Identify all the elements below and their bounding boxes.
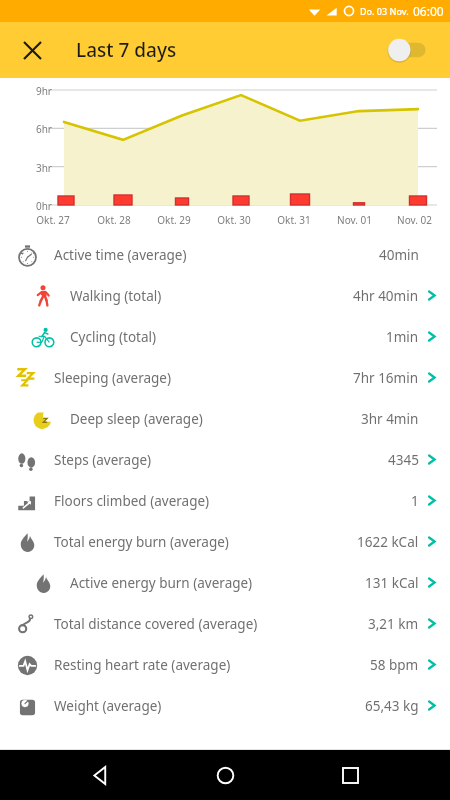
- staticText: Deep sleep (average): [70, 410, 203, 428]
- staticText: Floors climbed (average): [54, 492, 210, 510]
- staticText: 131 kCal: [365, 574, 419, 592]
- staticText: 1622 kCal: [357, 533, 419, 551]
- staticText: Do. 03 Nov.: [360, 5, 409, 17]
- button[interactable]: Deep sleep (average): [0, 398, 450, 439]
- button[interactable]: Active time (average): [0, 234, 450, 275]
- staticText: 7hr 16min: [353, 369, 419, 387]
- staticText: 4hr 40min: [353, 287, 419, 305]
- button[interactable]: Weight (average): [0, 685, 450, 726]
- staticText: 3,21 km: [368, 615, 419, 633]
- staticText: Resting heart rate (average): [54, 656, 231, 674]
- staticText: Nov. 01: [337, 213, 372, 227]
- staticText: Steps (average): [54, 451, 152, 469]
- button[interactable]: Floors climbed (average): [0, 480, 450, 521]
- staticText: Last 7 days: [76, 37, 177, 63]
- staticText: Nov. 02: [397, 213, 432, 227]
- staticText: Walking (total): [70, 287, 162, 305]
- staticText: 4345: [388, 451, 419, 469]
- staticText: 6hr: [22, 122, 52, 136]
- staticText: Okt. 31: [277, 213, 311, 227]
- staticText: 3hr: [22, 161, 52, 175]
- staticText: 65,43 kg: [365, 697, 419, 715]
- staticText: Okt. 30: [217, 213, 251, 227]
- staticText: Okt. 29: [157, 213, 191, 227]
- button[interactable]: Walking (total): [0, 275, 450, 316]
- staticText: 1min: [386, 328, 419, 346]
- staticText: Weight (average): [54, 697, 162, 715]
- staticText: 58 bpm: [370, 656, 419, 674]
- button[interactable]: Total energy burn (average): [0, 521, 450, 562]
- staticText: Cycling (total): [70, 328, 157, 346]
- staticText: Okt. 28: [97, 213, 131, 227]
- staticText: Active time (average): [54, 246, 187, 264]
- staticText: 9hr: [22, 84, 52, 98]
- button[interactable]: Home: [201, 751, 249, 799]
- button[interactable]: Back: [77, 751, 125, 799]
- staticText: Total energy burn (average): [54, 533, 229, 551]
- button[interactable]: Recent apps: [326, 751, 374, 799]
- button[interactable]: Cycling (total): [0, 316, 450, 357]
- staticText: 0hr: [22, 199, 52, 213]
- button[interactable]: Toggle: [384, 32, 436, 68]
- staticText: Sleeping (average): [54, 369, 172, 387]
- button[interactable]: Close: [14, 32, 50, 68]
- button[interactable]: Total distance covered (average): [0, 603, 450, 644]
- staticText: Total distance covered (average): [54, 615, 258, 633]
- button[interactable]: Steps (average): [0, 439, 450, 480]
- staticText: 40min: [379, 246, 419, 264]
- staticText: Okt. 27: [36, 213, 70, 227]
- button[interactable]: Active energy burn (average): [0, 562, 450, 603]
- staticText: 3hr 4min: [361, 410, 419, 428]
- staticText: 06:00: [413, 3, 444, 19]
- button[interactable]: Resting heart rate (average): [0, 644, 450, 685]
- staticText: 1: [411, 492, 419, 510]
- button[interactable]: Sleeping (average): [0, 357, 450, 398]
- staticText: Active energy burn (average): [70, 574, 253, 592]
